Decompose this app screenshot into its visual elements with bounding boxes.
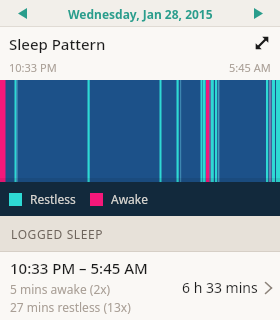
staticText: 6 h 33 mins xyxy=(182,278,258,297)
button[interactable]: Next day xyxy=(236,0,280,27)
staticText: Sleep Pattern xyxy=(9,34,106,54)
staticText: LOGGED SLEEP xyxy=(11,226,104,242)
button[interactable]: Previous day xyxy=(0,0,44,27)
staticText: 27 mins restless (13x) xyxy=(10,299,131,315)
staticText: 10:33 PM xyxy=(9,60,57,75)
staticText: 5:45 AM xyxy=(229,60,271,75)
button[interactable]: 10:33 PM – 5:45 AM xyxy=(0,252,280,320)
button[interactable]: Expand chart xyxy=(250,31,274,55)
staticText: Awake xyxy=(111,191,149,207)
staticText: Wednesday, Jan 28, 2015 xyxy=(68,6,213,22)
staticText: 5 mins awake (2x) xyxy=(10,281,111,297)
staticText: Restless xyxy=(30,191,76,207)
button[interactable]: Sleep pattern chart xyxy=(0,80,280,182)
staticText: 10:33 PM – 5:45 AM xyxy=(10,258,148,278)
